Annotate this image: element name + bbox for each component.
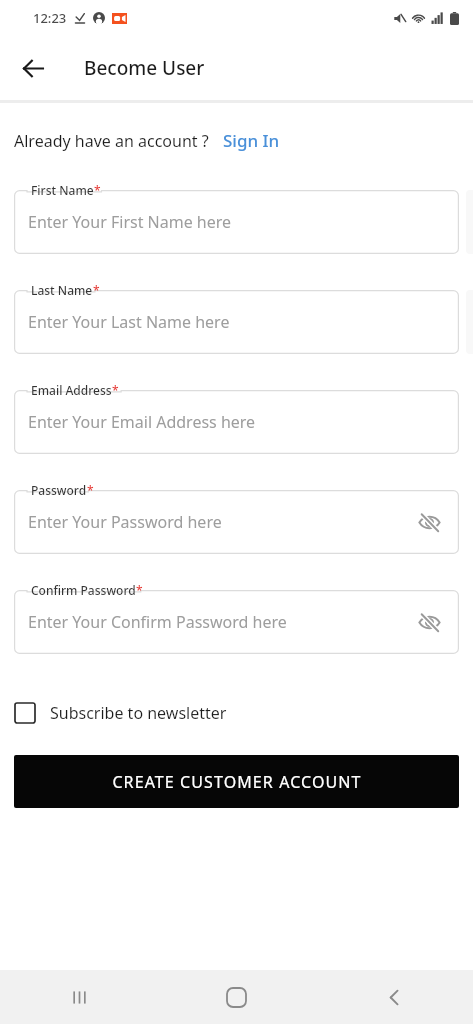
button[interactable]: Toggle password visibility (413, 506, 445, 538)
button[interactable]: Back (12, 47, 54, 89)
staticText: * (136, 582, 143, 598)
staticText: Sign In (223, 129, 280, 152)
button[interactable]: Recent apps (49, 970, 109, 1024)
staticText: Become User (84, 55, 205, 81)
staticText: * (112, 382, 119, 398)
staticText: Already have an account ? (14, 130, 209, 152)
button[interactable]: Back (364, 970, 424, 1024)
staticText: CREATE CUSTOMER ACCOUNT (112, 771, 362, 793)
button[interactable]: Enter Your Last Name here (14, 290, 459, 354)
button[interactable]: Enter Your Confirm Password here (14, 590, 459, 654)
staticText: Email Address (31, 382, 112, 398)
staticText: Password (31, 482, 87, 498)
staticText: * (94, 182, 101, 198)
staticText: First Name (31, 182, 94, 198)
staticText: Enter Your First Name here (28, 211, 232, 233)
staticText: Enter Your Email Address here (28, 411, 256, 433)
button[interactable]: Sign In (221, 127, 282, 154)
staticText: Enter Your Password here (28, 511, 222, 533)
staticText: Subscribe to newsletter (50, 702, 227, 724)
staticText: Enter Your Confirm Password here (28, 611, 287, 633)
button[interactable]: Home (206, 970, 266, 1024)
staticText: Enter Your Last Name here (28, 311, 230, 333)
button[interactable]: Enter Your First Name here (14, 190, 459, 254)
staticText: * (87, 482, 94, 498)
staticText: Confirm Password (31, 582, 136, 598)
button[interactable]: CREATE CUSTOMER ACCOUNT (14, 755, 459, 808)
button[interactable]: Toggle password visibility (413, 606, 445, 638)
button[interactable]: Enter Your Password here (14, 490, 459, 554)
staticText: 12:23 (33, 9, 67, 27)
staticText: * (93, 282, 100, 298)
staticText: Last Name (31, 282, 93, 298)
button[interactable]: Subscribe to newsletter (14, 698, 237, 728)
button[interactable]: Enter Your Email Address here (14, 390, 459, 454)
